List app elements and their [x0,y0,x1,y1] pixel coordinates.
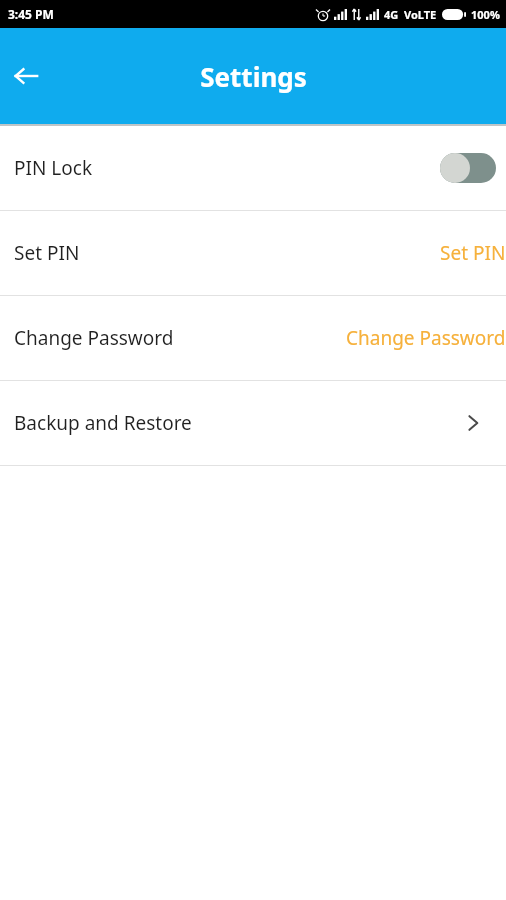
button[interactable]: Change Password [0,296,506,380]
staticText: VoLTE [404,7,437,22]
staticText: Change Password [346,325,506,351]
staticText: Backup and Restore [14,410,192,436]
button[interactable]: Backup and Restore [0,381,506,465]
staticText: 4G [384,7,399,22]
staticText: Settings [200,59,307,94]
button[interactable]: Back [4,54,48,98]
staticText: Set PIN [440,240,506,266]
staticText: PIN Lock [14,155,93,181]
staticText: 100% [471,7,500,22]
button[interactable]: PIN Lock [0,126,506,210]
button[interactable]: Set PIN [0,211,506,295]
staticText: Change Password [14,325,174,351]
staticText: Set PIN [14,240,80,266]
button[interactable]: PIN Lock toggle [440,153,496,183]
staticText: 3:45 PM [8,6,54,22]
